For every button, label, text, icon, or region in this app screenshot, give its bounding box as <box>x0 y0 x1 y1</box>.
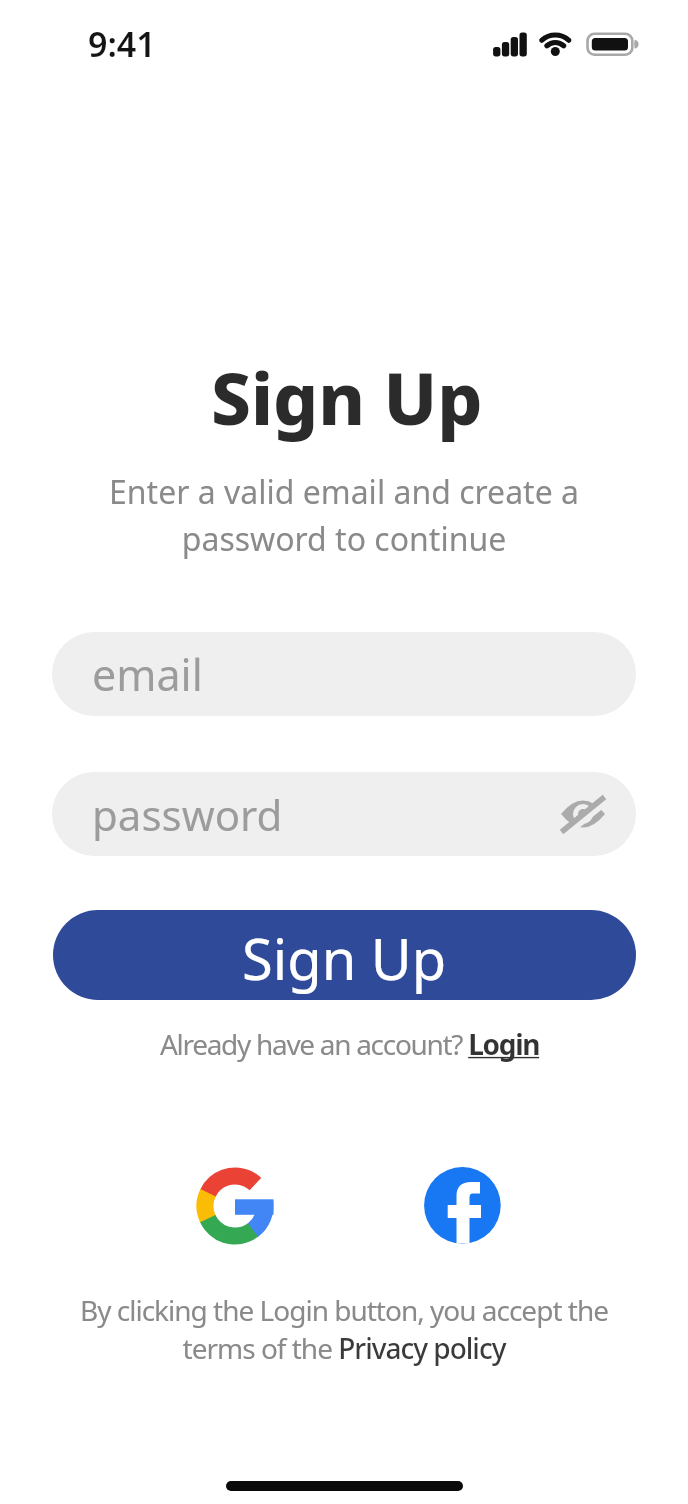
button[interactable]: email <box>52 632 636 716</box>
staticText: password <box>92 786 283 843</box>
button[interactable]: Sign Up <box>53 910 636 1000</box>
staticText: Sign Up <box>242 920 447 996</box>
staticText: 9:41 <box>88 21 156 67</box>
button[interactable] <box>553 784 613 844</box>
staticText: Enter a valid email and create a passwor… <box>109 470 579 560</box>
staticText: email <box>92 645 203 704</box>
button[interactable]: password <box>52 772 636 856</box>
button[interactable] <box>196 1167 274 1245</box>
staticText: Sign Up <box>211 349 483 446</box>
button[interactable] <box>424 1167 501 1244</box>
button[interactable]: Already have an account? Login <box>160 1025 540 1063</box>
button[interactable]: By clicking the Login button, you accept… <box>80 1291 608 1367</box>
